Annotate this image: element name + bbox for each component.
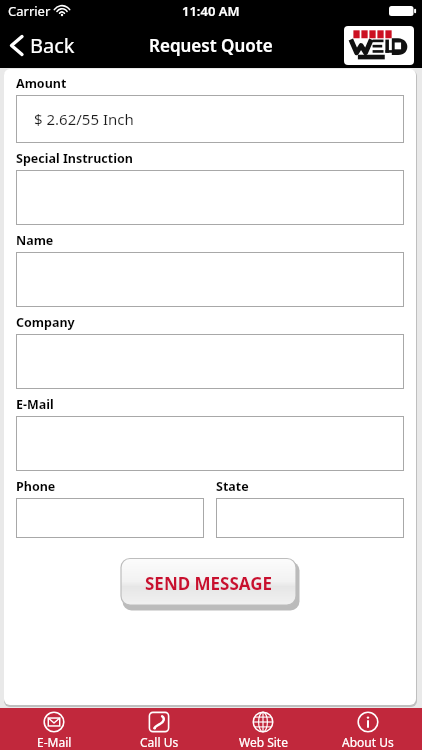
button[interactable]: E-Mail bbox=[4, 708, 104, 750]
staticText: Back bbox=[30, 32, 75, 59]
staticText: Name bbox=[16, 232, 54, 249]
staticText: Request Quote bbox=[149, 34, 273, 57]
staticText: E-Mail bbox=[37, 734, 72, 750]
staticText: Company bbox=[16, 314, 75, 331]
button[interactable]: SEND MESSAGE bbox=[120, 558, 300, 610]
button[interactable]: Essex Weld Solutions logo bbox=[344, 26, 414, 65]
button[interactable]: Text input bbox=[16, 170, 404, 225]
staticText: About Us bbox=[342, 734, 394, 750]
staticText: E-Mail bbox=[16, 396, 54, 413]
button[interactable]: $ 2.62/55 Inch bbox=[16, 95, 404, 143]
staticText: 11:40 AM bbox=[182, 2, 240, 20]
staticText: Carrier bbox=[8, 2, 51, 20]
button[interactable]: Text input bbox=[16, 334, 404, 389]
button[interactable]: About Us bbox=[318, 708, 418, 750]
button[interactable]: Back bbox=[0, 22, 85, 68]
staticText: State bbox=[216, 478, 249, 495]
button[interactable]: Text input bbox=[16, 252, 404, 307]
staticText: $ 2.62/55 Inch bbox=[34, 109, 134, 129]
staticText: Amount bbox=[16, 75, 67, 92]
button[interactable]: Text input bbox=[16, 498, 204, 538]
button[interactable]: Text input bbox=[16, 416, 404, 471]
button[interactable]: Call Us bbox=[109, 708, 209, 750]
staticText: Phone bbox=[16, 478, 56, 495]
staticText: Call Us bbox=[140, 734, 179, 750]
staticText: Special Instruction bbox=[16, 150, 133, 167]
button[interactable]: Web Site bbox=[213, 708, 313, 750]
staticText: Web Site bbox=[239, 734, 288, 750]
button[interactable]: Text input bbox=[216, 498, 404, 538]
staticText: SEND MESSAGE bbox=[145, 572, 273, 595]
